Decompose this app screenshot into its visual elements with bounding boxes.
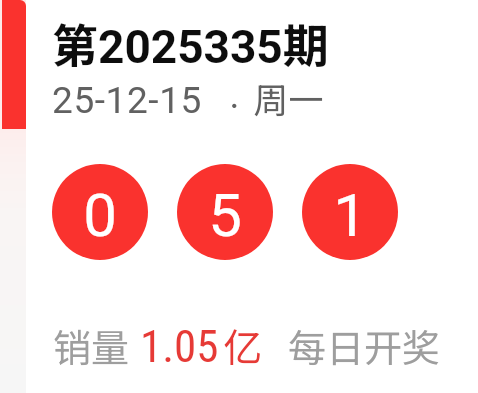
staticText: 5 [208,180,242,250]
button[interactable]: 5 [177,164,273,260]
button[interactable]: Lottery type tab [2,0,26,129]
staticText: 25‑12‑15 · 周一 [52,72,324,123]
staticText: 1.05 亿 [140,317,263,373]
staticText: 1 [333,180,367,250]
staticText: 销量 [53,318,130,373]
button[interactable]: 1 [302,164,398,260]
staticText: 每日开奖 [288,318,441,373]
button[interactable]: 0 [52,164,148,260]
staticText: 0 [83,180,117,250]
staticText: 第2025335期 [52,10,329,77]
